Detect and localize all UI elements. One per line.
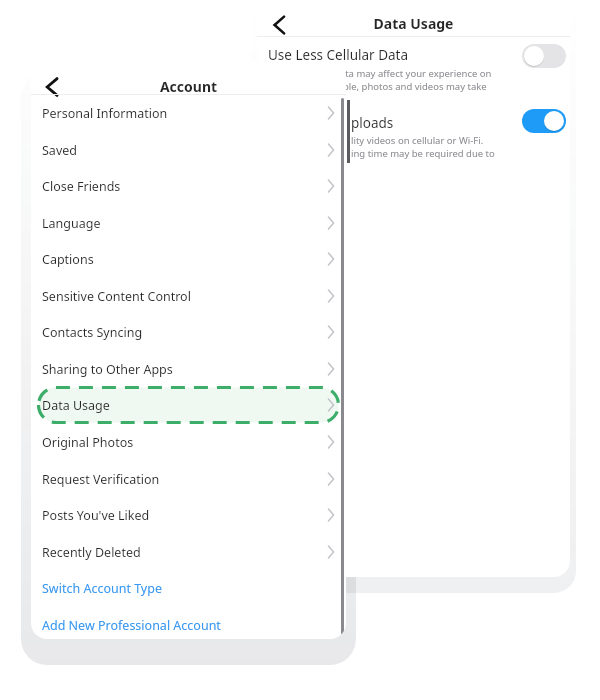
button[interactable]: [31, 534, 346, 570]
button[interactable]: [31, 205, 346, 241]
staticText: Captions: [42, 251, 94, 268]
button[interactable]: Back: [36, 72, 70, 102]
staticText: Close Friends: [42, 178, 121, 195]
staticText: Request Verification: [42, 471, 160, 488]
staticText: Contacts Syncing: [42, 324, 143, 341]
button[interactable]: [31, 461, 346, 497]
staticText: Add New Professional Account: [42, 617, 221, 634]
button[interactable]: [31, 351, 346, 387]
button[interactable]: [31, 95, 346, 131]
button[interactable]: [257, 37, 570, 86]
button[interactable]: [31, 314, 346, 350]
button[interactable]: Toggle off: [522, 44, 566, 68]
staticText: Original Photos: [42, 434, 134, 451]
staticText: Data Usage: [257, 14, 570, 36]
staticText: Sharing to Other Apps: [42, 361, 173, 378]
button[interactable]: Toggle on: [522, 109, 566, 133]
staticText: Personal Information: [42, 105, 168, 122]
staticText: Language: [42, 215, 101, 232]
staticText: Posts You've Liked: [42, 507, 150, 524]
button[interactable]: [31, 424, 346, 460]
button[interactable]: [31, 571, 346, 605]
button[interactable]: [31, 497, 346, 533]
staticText: lity videos on cellular or Wi-Fi.: [351, 134, 484, 147]
staticText: Use Less Cellular Data: [268, 46, 409, 64]
button[interactable]: Back: [263, 10, 297, 40]
button[interactable]: [31, 241, 346, 277]
staticText: ploads: [351, 114, 394, 132]
staticText: mple, photos and videos may take: [334, 80, 487, 93]
button[interactable]: [31, 608, 346, 639]
staticText: Data Usage: [42, 397, 110, 414]
button[interactable]: [31, 387, 346, 423]
button[interactable]: [31, 278, 346, 314]
staticText: Recently Deleted: [42, 544, 141, 561]
staticText: ing time may be required due to: [351, 147, 495, 160]
button[interactable]: [31, 132, 346, 168]
staticText: data may affect your experience on: [334, 67, 492, 80]
staticText: Saved: [42, 142, 77, 159]
button[interactable]: [31, 168, 346, 204]
staticText: Sensitive Content Control: [42, 288, 191, 305]
staticText: Switch Account Type: [42, 580, 162, 597]
staticText: Account: [31, 77, 346, 99]
